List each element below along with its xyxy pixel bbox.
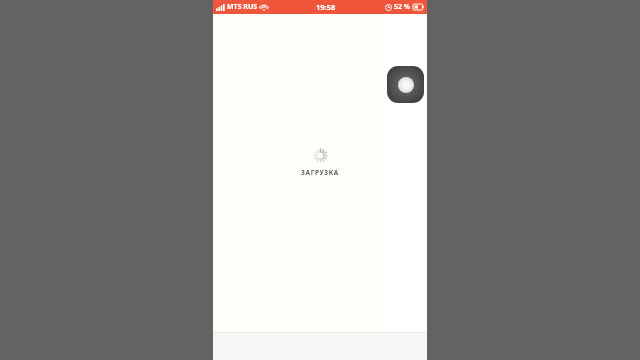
staticText: MTS RUS [227,2,258,12]
staticText: 52 % [394,2,411,12]
button[interactable]: Recording indicator [387,66,424,103]
staticText: 19:58 [316,2,336,12]
staticText: ЗАГРУЗКА [301,168,339,177]
